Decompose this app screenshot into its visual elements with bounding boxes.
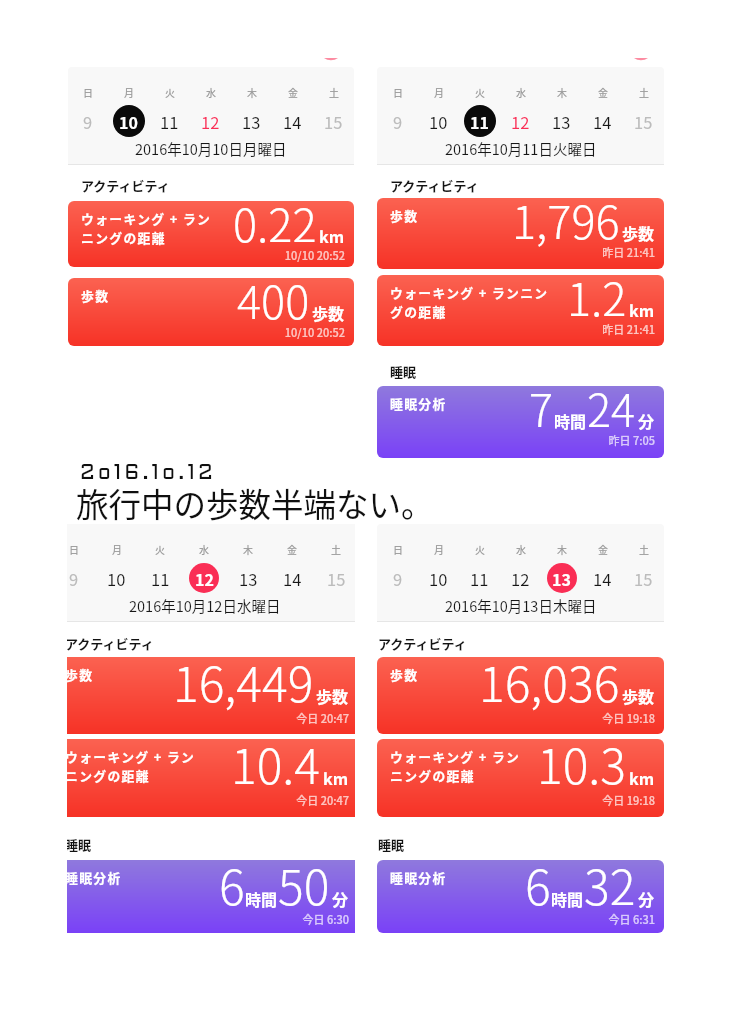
button[interactable]: 10: [418, 102, 459, 139]
staticText: 12: [511, 567, 530, 591]
button[interactable]: 13: [541, 559, 582, 596]
staticText: 火: [165, 85, 175, 99]
button[interactable]: 歩数: [377, 198, 664, 269]
staticText: 1,796: [512, 198, 620, 252]
staticText: 歩数: [81, 286, 221, 305]
staticText: 14: [593, 567, 612, 591]
button[interactable]: 15: [313, 102, 354, 139]
staticText: ウォーキング + ランニングの距離: [67, 747, 197, 785]
button[interactable]: 12: [500, 559, 541, 596]
staticText: 9: [393, 567, 403, 591]
staticText: 日: [393, 85, 403, 99]
staticText: 10.3: [537, 739, 627, 798]
staticText: 土: [639, 542, 649, 556]
button[interactable]: 11: [138, 559, 182, 596]
staticText: 歩数: [67, 665, 215, 684]
staticText: 10.4: [231, 739, 321, 798]
staticText: 9: [83, 110, 93, 134]
button[interactable]: 11: [459, 102, 500, 139]
button[interactable]: ウォーキング + ランニングの距離: [68, 201, 354, 267]
button[interactable]: 15: [623, 102, 664, 139]
button[interactable]: 9: [377, 559, 418, 596]
button[interactable]: 13: [231, 102, 272, 139]
staticText: 分: [638, 887, 655, 910]
button[interactable]: 歩数: [67, 657, 355, 734]
staticText: 400: [237, 278, 310, 332]
staticText: 月: [434, 85, 444, 99]
staticText: 金: [287, 542, 297, 556]
staticText: 睡眠分析: [67, 868, 215, 887]
staticText: 10: [119, 110, 138, 133]
button[interactable]: 10: [418, 559, 459, 596]
button[interactable]: 9: [377, 102, 418, 139]
staticText: 今日 6:31: [377, 911, 655, 927]
staticText: 32: [584, 860, 636, 919]
staticText: 昨日 21:41: [377, 244, 655, 260]
button[interactable]: 10: [108, 102, 149, 139]
staticText: 日: [83, 85, 93, 99]
button[interactable]: 9: [67, 559, 95, 596]
staticText: 14: [593, 110, 612, 134]
staticText: 歩数: [622, 221, 655, 244]
staticText: 睡眠: [378, 835, 405, 854]
staticText: 時間: [551, 887, 584, 910]
staticText: 今日 19:18: [377, 710, 655, 726]
button[interactable]: 10: [95, 559, 138, 596]
button[interactable]: 12: [182, 559, 226, 596]
button[interactable]: 12: [190, 102, 231, 139]
button[interactable]: 14: [270, 559, 314, 596]
staticText: 歩数: [622, 684, 655, 707]
staticText: 水: [199, 542, 209, 556]
button[interactable]: 13: [541, 102, 582, 139]
button[interactable]: ウォーキング + ランニングの距離: [377, 739, 664, 817]
staticText: 月: [112, 542, 122, 556]
staticText: 日: [69, 542, 79, 556]
staticText: 火: [475, 542, 485, 556]
button[interactable]: 11: [149, 102, 190, 139]
button[interactable]: 睡眠分析: [377, 860, 664, 933]
button[interactable]: 13: [226, 559, 270, 596]
staticText: 歩数: [316, 684, 349, 707]
staticText: アクティビティ: [390, 176, 479, 195]
staticText: 睡眠: [390, 362, 417, 381]
button[interactable]: ウォーキング + ランニングの距離: [67, 739, 355, 817]
staticText: km: [629, 298, 655, 321]
staticText: 10: [107, 567, 126, 591]
button[interactable]: 12: [500, 102, 541, 139]
staticText: 木: [247, 85, 257, 99]
staticText: 木: [243, 542, 253, 556]
staticText: 13: [552, 567, 571, 590]
staticText: 旅行中の歩数半端ない。: [76, 479, 434, 526]
staticText: 2016年10月13日木曜日: [445, 595, 597, 616]
staticText: アクティビティ: [67, 634, 154, 653]
staticText: 今日 20:47: [67, 792, 349, 808]
button[interactable]: 14: [272, 102, 313, 139]
button[interactable]: 9: [68, 102, 108, 139]
button[interactable]: 歩数: [377, 657, 664, 734]
staticText: 11: [470, 567, 489, 591]
staticText: 火: [155, 542, 165, 556]
staticText: 13: [239, 567, 258, 591]
staticText: 15: [327, 567, 346, 591]
staticText: アクティビティ: [378, 634, 467, 653]
button[interactable]: 15: [623, 559, 664, 596]
staticText: 睡眠: [67, 835, 92, 854]
button[interactable]: 14: [582, 559, 623, 596]
staticText: 12: [511, 110, 530, 134]
button[interactable]: 睡眠分析: [67, 860, 355, 933]
button[interactable]: 15: [314, 559, 355, 596]
staticText: 2016年10月12日水曜日: [129, 595, 281, 616]
button[interactable]: ウォーキング + ランニングの距離: [377, 275, 664, 346]
staticText: 金: [288, 85, 298, 99]
button[interactable]: 14: [582, 102, 623, 139]
staticText: 歩数: [390, 206, 530, 225]
staticText: 昨日 7:05: [377, 432, 655, 448]
button[interactable]: 11: [459, 559, 500, 596]
staticText: 水: [206, 85, 216, 99]
button[interactable]: 歩数: [68, 278, 354, 346]
button[interactable]: 睡眠分析: [377, 386, 664, 458]
staticText: 睡眠分析: [390, 868, 530, 887]
staticText: 9: [69, 567, 79, 591]
staticText: 15: [634, 567, 653, 591]
staticText: km: [319, 224, 345, 247]
